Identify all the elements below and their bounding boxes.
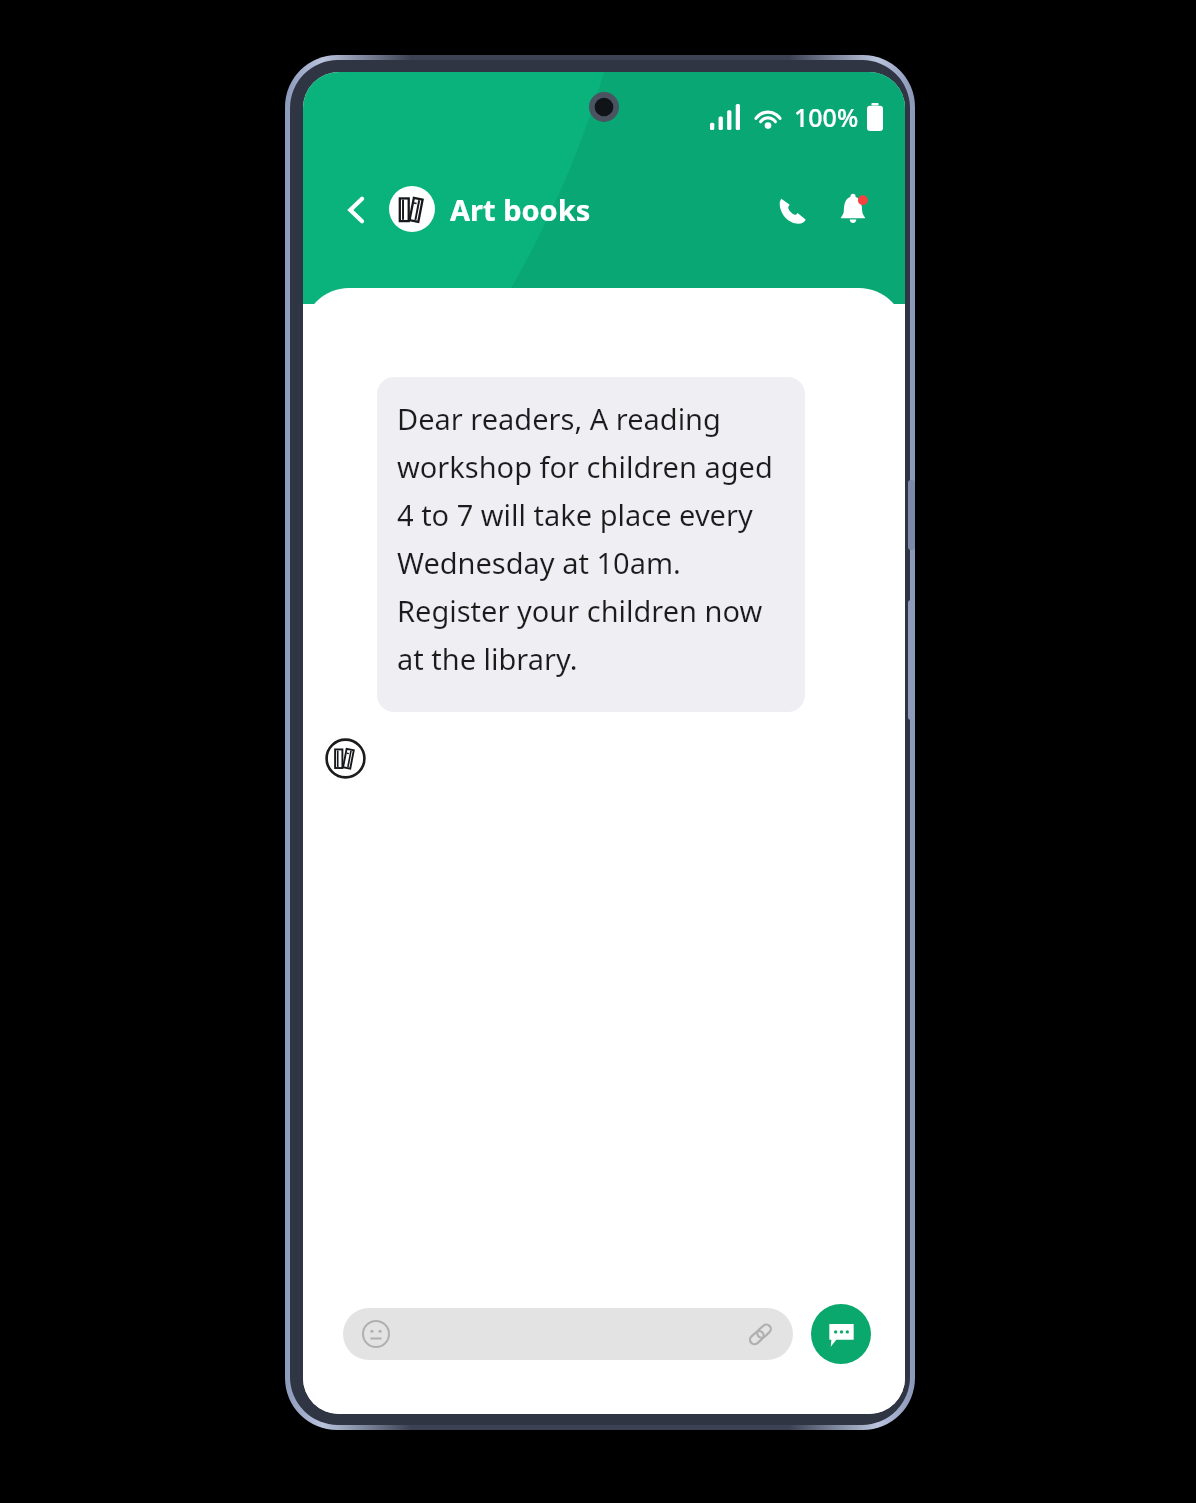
staticText: Dear readers, A reading workshop for chi… <box>397 399 787 678</box>
button[interactable]: Art books <box>389 184 591 234</box>
button[interactable]: Emoji <box>359 1317 393 1351</box>
button[interactable]: Attach <box>743 1317 777 1351</box>
button[interactable]: Call <box>765 184 817 236</box>
button[interactable]: Art books avatar <box>325 738 366 779</box>
staticText: Art books <box>450 190 591 229</box>
button[interactable]: Back <box>331 184 383 236</box>
button[interactable]: Notifications <box>827 184 879 236</box>
button[interactable]: Dear readers, A reading workshop for chi… <box>377 377 805 712</box>
staticText: 100% <box>794 100 859 134</box>
button[interactable]: Send message <box>811 1304 871 1364</box>
button[interactable]: Emoji <box>343 1308 793 1360</box>
